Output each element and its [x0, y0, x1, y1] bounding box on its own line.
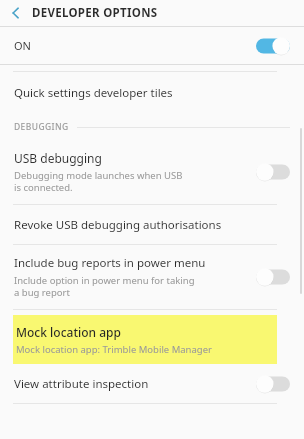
button[interactable]: Back	[0, 0, 32, 26]
staticText: Quick settings developer tiles	[14, 85, 173, 101]
staticText: ON	[14, 38, 31, 53]
button[interactable]: Switch off	[256, 373, 290, 395]
staticText: Mock location app	[16, 324, 121, 340]
staticText: DEBUGGING	[14, 121, 69, 133]
button[interactable]: USB debugging	[0, 140, 304, 204]
button[interactable]: View attribute inspection	[0, 364, 304, 403]
staticText: Revoke USB debugging authorisations	[14, 217, 222, 233]
button[interactable]: ON	[0, 27, 304, 64]
button[interactable]: Revoke USB debugging authorisations	[0, 205, 304, 244]
staticText: Include option in power menu for taking …	[14, 274, 195, 299]
button[interactable]: Include bug reports in power menu	[0, 245, 304, 309]
button[interactable]: Quick settings developer tiles	[0, 72, 304, 114]
staticText: Mock location app: Trimble Mobile Manage…	[16, 343, 212, 356]
staticText: View attribute inspection	[14, 376, 149, 392]
button[interactable]: Mock location app	[13, 315, 277, 364]
button[interactable]: Switch on	[256, 35, 290, 57]
staticText: Include bug reports in power menu	[14, 255, 206, 271]
button[interactable]: Switch off	[256, 266, 290, 288]
staticText: USB debugging	[14, 150, 102, 166]
staticText: DEVELOPER OPTIONS	[32, 5, 158, 21]
button[interactable]: Switch off	[256, 161, 290, 183]
staticText: Debugging mode launches when USB is conn…	[14, 169, 183, 194]
